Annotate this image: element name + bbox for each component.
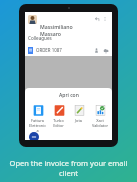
button[interactable]: Xact Validator xyxy=(90,103,109,129)
staticText: Colleagues xyxy=(28,35,52,41)
staticText: Jota xyxy=(75,118,82,123)
button[interactable]: Open xyxy=(29,132,39,140)
staticText: ORDER 1087 2017-11-23.xml xyxy=(36,47,93,53)
button[interactable]: Share attachment xyxy=(93,47,100,54)
staticText: Xact Validator xyxy=(92,118,108,128)
staticText: Turbo Editor xyxy=(49,118,68,128)
button[interactable]: Jota xyxy=(69,103,88,124)
staticText: Massimiliano Massaro xyxy=(40,23,93,37)
button[interactable] xyxy=(28,15,37,24)
button[interactable]: Download attachment xyxy=(102,47,109,54)
staticText: Open the invoice from your email client xyxy=(4,158,133,178)
button[interactable]: Fattura Elettronica xyxy=(28,103,47,134)
staticText: Apri con xyxy=(59,92,79,99)
button[interactable]: ORDER 1087 2017-11-23.xml xyxy=(25,44,112,56)
staticText: Fattura Elettronica xyxy=(28,118,47,133)
button[interactable]: Turbo Editor xyxy=(49,103,68,129)
button[interactable]: More options xyxy=(101,15,109,23)
button[interactable]: Reply xyxy=(93,15,101,23)
